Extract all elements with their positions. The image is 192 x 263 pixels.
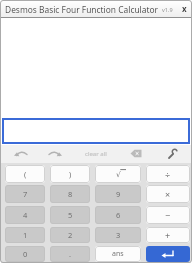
button[interactable]: 6 bbox=[95, 206, 141, 224]
staticText: ans bbox=[112, 249, 124, 259]
button[interactable] bbox=[2, 118, 190, 144]
button[interactable]: x bbox=[176, 0, 192, 17]
button[interactable]: 3 bbox=[95, 227, 141, 243]
button[interactable]: ans bbox=[95, 246, 141, 262]
staticText: 4 bbox=[23, 210, 28, 220]
button[interactable]: × bbox=[146, 185, 190, 203]
staticText: 9 bbox=[116, 189, 121, 199]
staticText: 7 bbox=[23, 189, 28, 199]
button[interactable] bbox=[83, 145, 109, 163]
button[interactable]: 1 bbox=[5, 227, 45, 243]
staticText: 0 bbox=[23, 249, 28, 259]
staticText: + bbox=[165, 229, 171, 241]
button[interactable]: + bbox=[146, 227, 190, 243]
button[interactable]: √ bbox=[95, 165, 141, 183]
button[interactable] bbox=[126, 145, 146, 163]
button[interactable]: 7 bbox=[5, 185, 45, 203]
staticText: 3 bbox=[116, 230, 121, 240]
button[interactable] bbox=[146, 246, 190, 262]
staticText: x bbox=[182, 3, 187, 14]
button[interactable]: ( bbox=[5, 165, 45, 183]
staticText: × bbox=[165, 188, 171, 200]
button[interactable]: 2 bbox=[50, 227, 90, 243]
button[interactable] bbox=[11, 145, 31, 163]
staticText: clear all bbox=[85, 150, 107, 158]
button[interactable]: 8 bbox=[50, 185, 90, 203]
button[interactable] bbox=[163, 145, 183, 163]
button[interactable]: . bbox=[50, 246, 90, 262]
staticText: 5 bbox=[68, 210, 73, 220]
staticText: √ bbox=[116, 170, 121, 179]
staticText: Desmos Basic Four Function Calculator bbox=[5, 4, 159, 15]
staticText: ( bbox=[24, 169, 27, 179]
staticText: ÷ bbox=[165, 168, 171, 180]
button[interactable]: 5 bbox=[50, 206, 90, 224]
staticText: − bbox=[165, 209, 171, 221]
button[interactable]: ) bbox=[50, 165, 90, 183]
staticText: v1.9 bbox=[162, 6, 173, 13]
button[interactable] bbox=[45, 145, 65, 163]
staticText: 6 bbox=[116, 210, 121, 220]
staticText: ) bbox=[69, 169, 72, 179]
staticText: 2 bbox=[68, 230, 73, 240]
staticText: 1 bbox=[23, 230, 28, 240]
button[interactable]: 9 bbox=[95, 185, 141, 203]
staticText: . bbox=[69, 249, 72, 259]
staticText: 8 bbox=[68, 189, 73, 199]
button[interactable]: 0 bbox=[5, 246, 45, 262]
button[interactable]: − bbox=[146, 206, 190, 224]
button[interactable]: 4 bbox=[5, 206, 45, 224]
button[interactable]: ÷ bbox=[146, 165, 190, 183]
